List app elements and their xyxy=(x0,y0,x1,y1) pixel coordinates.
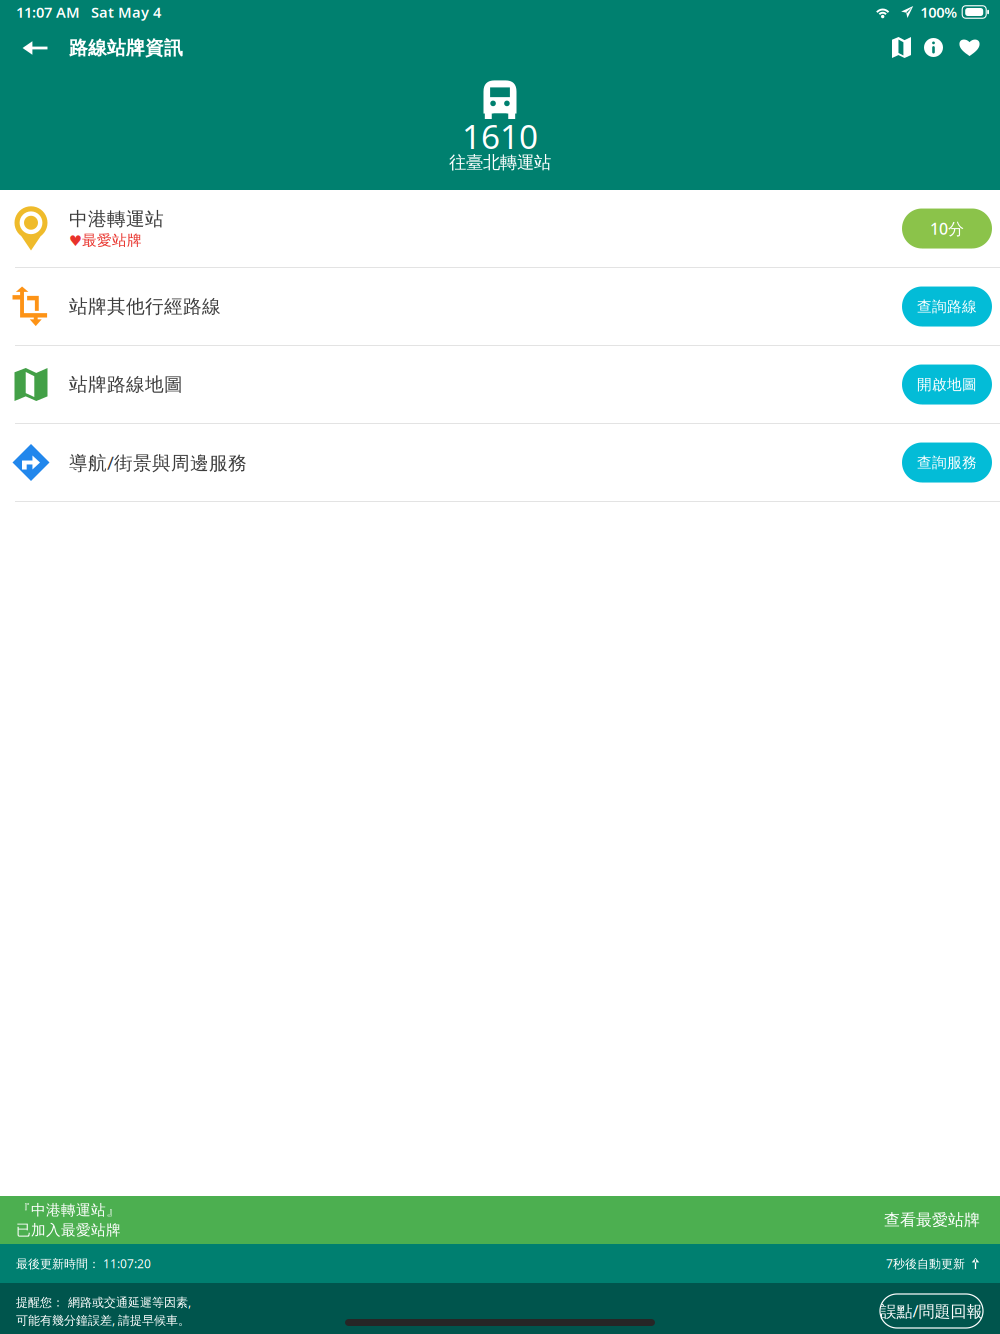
button[interactable]: 中港轉運站 xyxy=(0,190,1000,267)
staticText: 7秒後自動更新 xyxy=(886,1255,965,1271)
staticText: 查看最愛站牌 xyxy=(884,1210,980,1230)
staticText: 開啟地圖 xyxy=(917,375,977,393)
staticText: 已加入最愛站牌 xyxy=(16,1221,121,1239)
staticText: 100% xyxy=(920,2,957,22)
staticText: 中港轉運站 xyxy=(69,207,164,230)
staticText: ♥最愛站牌 xyxy=(69,231,142,249)
staticText: 往臺北轉運站 xyxy=(449,152,551,173)
staticText: 導航/街景與周邊服務 xyxy=(69,450,247,475)
button[interactable]: Favourite xyxy=(951,28,981,74)
staticText: 路線站牌資訊 xyxy=(69,36,183,59)
button[interactable]: Back xyxy=(8,28,62,74)
staticText: 可能有幾分鐘誤差, 請提早候車。 xyxy=(16,1312,190,1328)
button[interactable]: 站牌路線地圖 xyxy=(0,346,1000,423)
staticText: 查詢路線 xyxy=(917,297,977,315)
staticText: 10分 xyxy=(930,218,964,239)
button[interactable]: Information xyxy=(916,28,951,74)
button[interactable]: 導航/街景與周邊服務 xyxy=(0,424,1000,501)
staticText: 提醒您： 網路或交通延遲等因素, xyxy=(16,1294,191,1310)
button[interactable]: 7秒後自動更新 xyxy=(886,1247,980,1279)
staticText: 最後更新時間： 11:07:20 xyxy=(16,1255,151,1271)
button[interactable]: 誤點/問題回報 xyxy=(880,1294,983,1328)
staticText: Sat May 4 xyxy=(91,2,161,22)
staticText: 誤點/問題回報 xyxy=(880,1300,982,1322)
staticText: 11:07 AM xyxy=(16,2,80,22)
staticText: 站牌其他行經路線 xyxy=(69,295,221,318)
staticText: 1610 xyxy=(462,114,538,158)
staticText: 站牌路線地圖 xyxy=(69,373,183,396)
staticText: 查詢服務 xyxy=(917,453,977,471)
button[interactable]: Route map xyxy=(884,28,916,74)
staticText: 『中港轉運站』 xyxy=(16,1201,121,1219)
button[interactable]: 『中港轉運站』 xyxy=(0,1196,1000,1244)
button[interactable]: 站牌其他行經路線 xyxy=(0,268,1000,345)
